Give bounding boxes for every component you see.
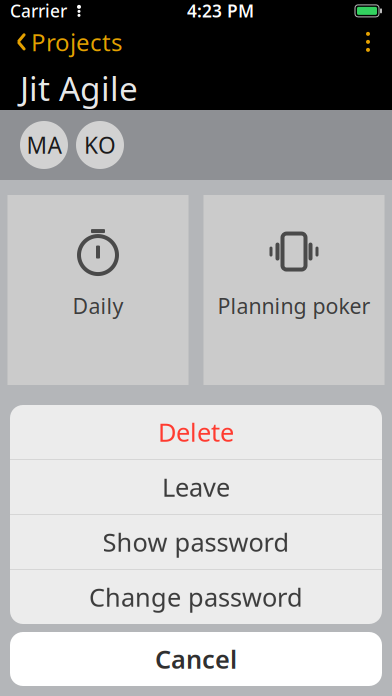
button[interactable]: Leave	[10, 460, 382, 514]
button[interactable]: Delete	[10, 405, 382, 459]
button[interactable]: Daily	[7, 195, 188, 385]
staticText: Planning poker	[217, 292, 370, 320]
staticText: Show password	[102, 525, 289, 559]
staticText: Carrier	[10, 0, 67, 22]
staticText: 4:23 PM	[187, 0, 254, 22]
button[interactable]: Cancel	[10, 632, 382, 686]
staticText: Change password	[89, 580, 303, 614]
staticText: MA	[26, 130, 61, 160]
staticText: KO	[84, 130, 116, 160]
staticText: Delete	[158, 415, 234, 449]
staticText: Cancel	[155, 642, 237, 676]
staticText: Daily	[72, 292, 123, 320]
button[interactable]: Show password	[10, 515, 382, 569]
staticText: Leave	[162, 470, 230, 504]
button[interactable]: Change password	[10, 570, 382, 624]
staticText: Jit Agile	[20, 66, 138, 110]
button[interactable]: MA	[20, 121, 68, 169]
staticText: Projects	[31, 26, 122, 58]
button[interactable]: Projects	[4, 20, 134, 64]
button[interactable]: KO	[76, 121, 124, 169]
button[interactable]: More options	[348, 24, 388, 60]
button[interactable]: Planning poker	[203, 195, 384, 385]
